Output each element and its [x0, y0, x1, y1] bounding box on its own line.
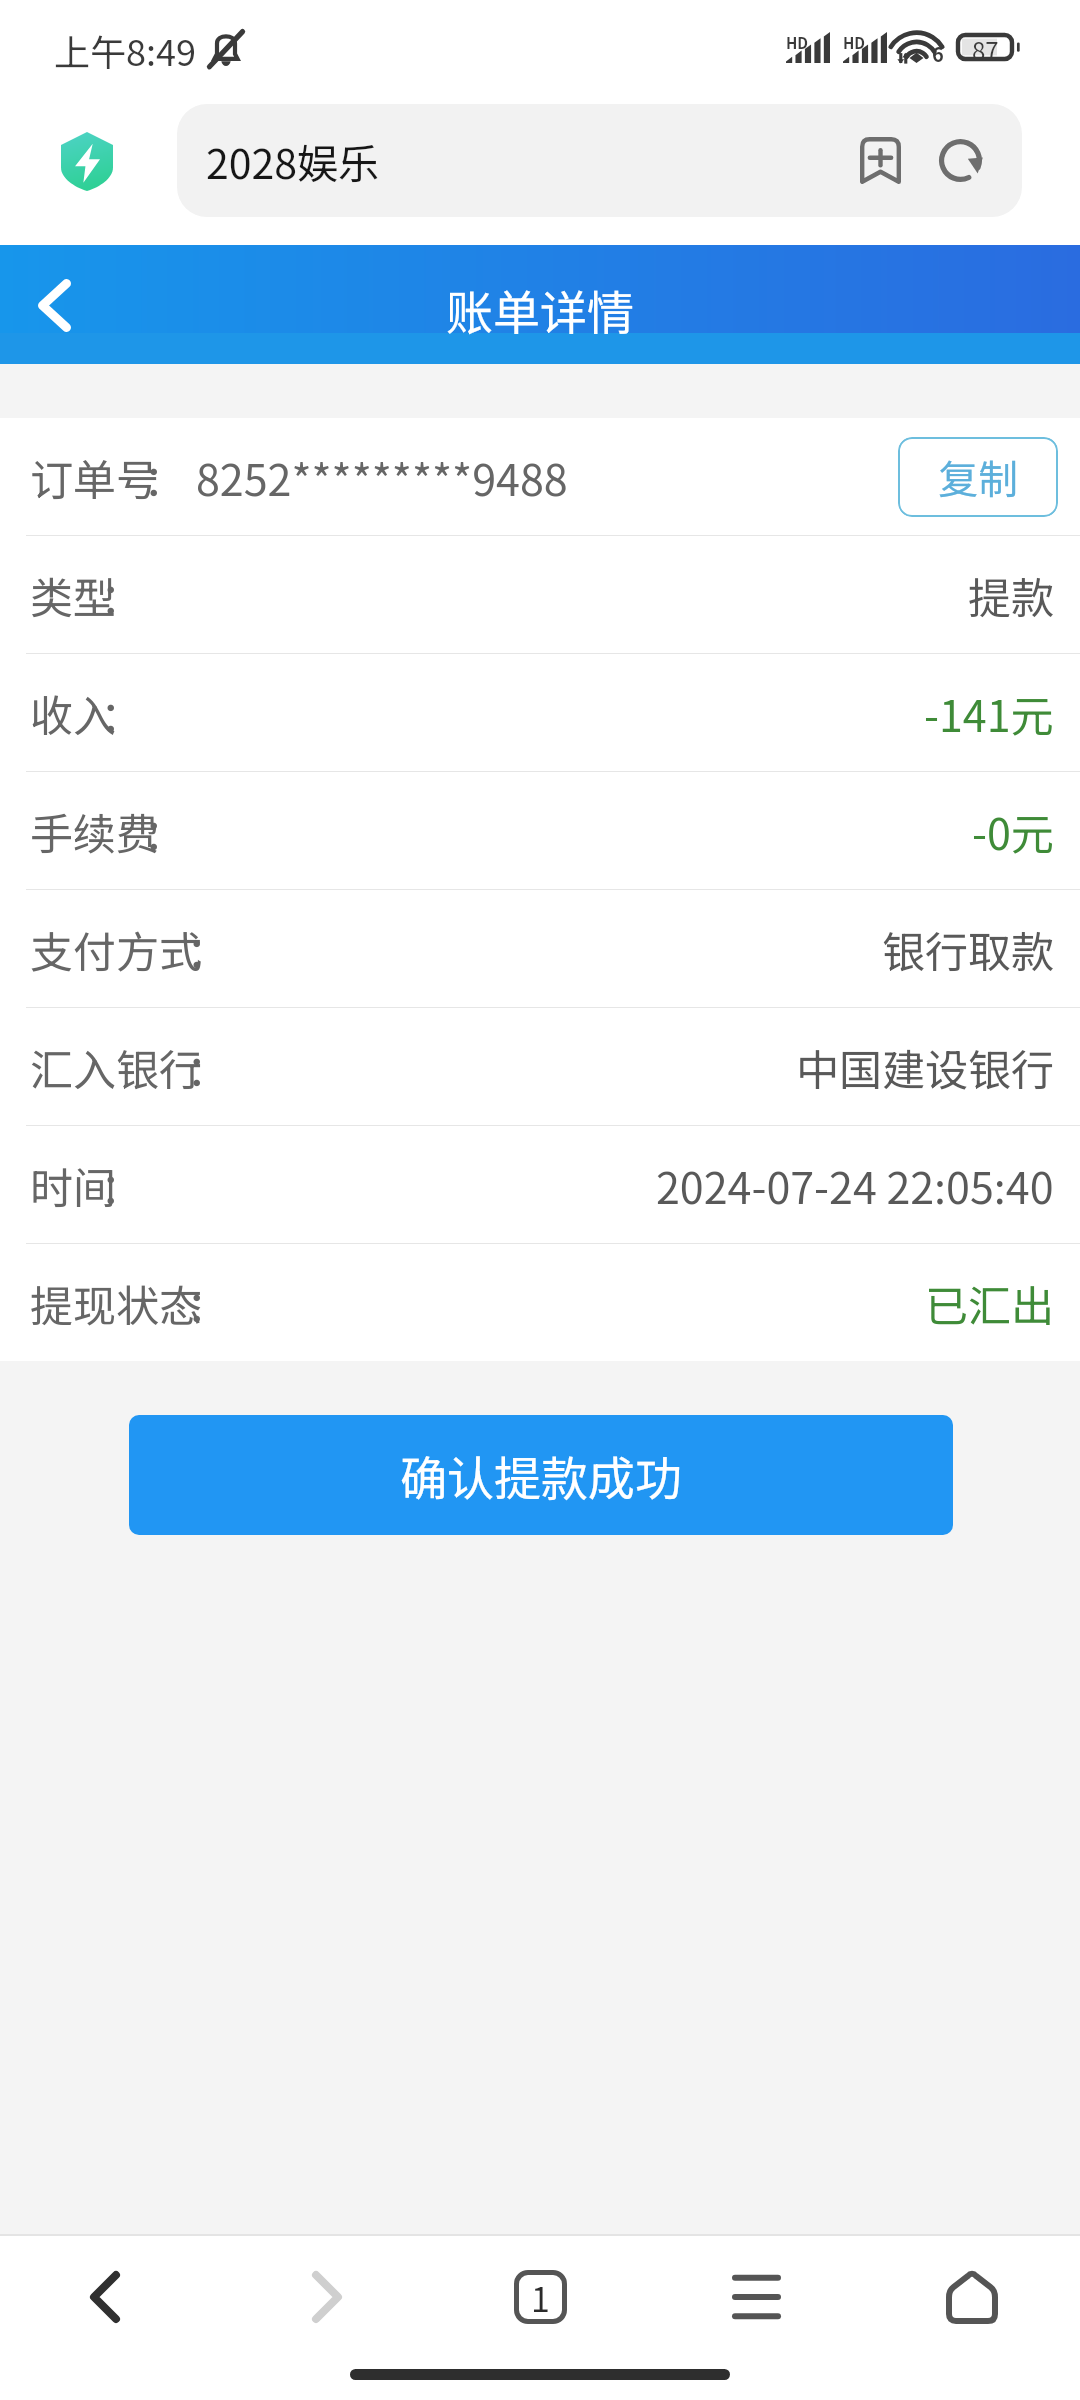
staticText: 时间 [30, 1154, 116, 1216]
staticText: 提款 [968, 564, 1054, 626]
staticText: 提现状态 [30, 1272, 202, 1334]
staticText: 订单号 [30, 446, 159, 508]
staticText: ： [143, 446, 186, 508]
staticText: 复制 [938, 448, 1018, 506]
button[interactable]: Menu [701, 2236, 811, 2358]
staticText: 1 [531, 2273, 550, 2322]
button[interactable]: Forward [272, 2236, 382, 2358]
staticText: ： [100, 564, 143, 626]
button[interactable]: Refresh [925, 104, 996, 217]
staticText: 8252*********9488 [196, 446, 568, 508]
button[interactable]: Back [50, 2236, 160, 2358]
staticText: 银行取款 [882, 918, 1054, 980]
staticText: HD [843, 32, 866, 54]
staticText: 2024-07-24 22:05:40 [656, 1154, 1054, 1216]
staticText: HD [786, 32, 809, 54]
button[interactable]: Add bookmark [845, 104, 916, 217]
staticText: 类型 [30, 564, 116, 626]
button[interactable]: 2028娱乐 [177, 104, 1022, 217]
staticText: ： [100, 1154, 143, 1216]
staticText: 2028娱乐 [206, 131, 380, 190]
staticText: 6 [932, 39, 944, 68]
staticText: 账单详情 [446, 275, 634, 343]
staticText: 收入 [30, 682, 116, 744]
staticText: 中国建设银行 [796, 1036, 1054, 1098]
staticText: ： [186, 918, 229, 980]
staticText: 上午8:49 [54, 24, 196, 76]
button[interactable]: 确认提款成功 [129, 1415, 953, 1535]
staticText: ： [186, 1036, 229, 1098]
staticText: -141元 [924, 682, 1054, 744]
staticText: -0元 [972, 800, 1054, 862]
staticText: 手续费 [30, 800, 159, 862]
staticText: 确认提款成功 [400, 1441, 682, 1509]
button[interactable]: Tabs [485, 2236, 595, 2358]
staticText: 汇入银行 [30, 1036, 202, 1098]
staticText: 87 [972, 32, 999, 60]
staticText: 支付方式 [30, 918, 202, 980]
staticText: ： [143, 800, 186, 862]
staticText: ： [100, 682, 143, 744]
staticText: 已汇出 [925, 1272, 1054, 1334]
button[interactable]: Back [21, 279, 84, 332]
button[interactable]: 复制 [898, 437, 1058, 517]
button[interactable]: Home [917, 2236, 1027, 2358]
staticText: ： [186, 1272, 229, 1334]
